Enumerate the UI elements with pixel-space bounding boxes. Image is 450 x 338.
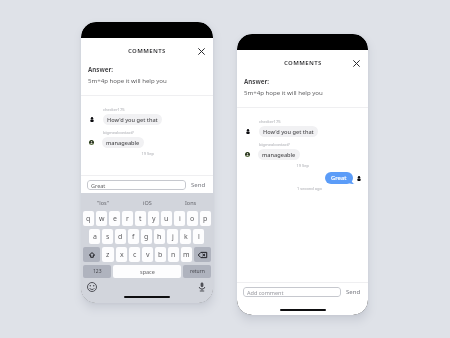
staticText: y xyxy=(152,214,156,224)
staticText: COMMENTS xyxy=(284,59,322,67)
button[interactable]: Emoji xyxy=(87,282,97,292)
staticText: q xyxy=(86,214,91,224)
button[interactable]: h xyxy=(154,229,165,244)
button[interactable]: n xyxy=(168,247,179,262)
button[interactable]: l xyxy=(193,229,204,244)
staticText: w xyxy=(99,214,105,224)
staticText: How'd you get that xyxy=(107,116,158,124)
staticText: b xyxy=(158,250,163,260)
button[interactable]: Ions xyxy=(169,193,213,211)
staticText: n xyxy=(171,250,176,260)
button[interactable]: Great xyxy=(331,172,347,184)
staticText: a xyxy=(93,232,97,242)
button[interactable]: Microphone xyxy=(197,282,207,292)
staticText: Answer: xyxy=(88,65,113,73)
button[interactable]: v xyxy=(142,247,153,262)
button[interactable]: return xyxy=(183,265,211,278)
staticText: 1 second ago xyxy=(251,186,368,191)
button[interactable]: d xyxy=(115,229,126,244)
button[interactable]: t xyxy=(135,211,146,226)
staticText: checker175 xyxy=(103,107,125,112)
button[interactable]: Great xyxy=(87,180,186,190)
button[interactable]: iOS xyxy=(125,193,169,211)
button[interactable]: a xyxy=(89,229,100,244)
staticText: j xyxy=(172,232,174,242)
staticText: manageable xyxy=(106,139,140,147)
staticText: x xyxy=(120,250,124,260)
staticText: v xyxy=(146,250,150,260)
staticText: How'd you get that xyxy=(263,128,314,136)
button[interactable]: c xyxy=(129,247,140,262)
button[interactable]: r xyxy=(122,211,133,226)
staticText: COMMENTS xyxy=(128,47,166,55)
staticText: return xyxy=(190,268,205,275)
staticText: checker175 xyxy=(259,119,281,124)
button[interactable]: m xyxy=(181,247,192,262)
staticText: i xyxy=(179,214,181,224)
button[interactable]: g xyxy=(141,229,152,244)
staticText: u xyxy=(164,214,169,224)
staticText: bigmealcontact? xyxy=(259,142,290,147)
staticText: Send xyxy=(191,181,206,189)
button[interactable]: i xyxy=(174,211,185,226)
staticText: h xyxy=(157,232,162,242)
button[interactable]: y xyxy=(148,211,159,226)
staticText: t xyxy=(139,214,142,224)
staticText: Answer: xyxy=(244,77,269,85)
staticText: Ions xyxy=(185,199,197,206)
button[interactable]: Shift xyxy=(83,247,100,262)
staticText: space xyxy=(140,268,155,275)
staticText: 5m+4p hope it will help you xyxy=(88,76,167,84)
button[interactable]: How'd you get that xyxy=(263,126,314,137)
button[interactable]: "los" xyxy=(81,193,125,211)
button[interactable]: p xyxy=(200,211,211,226)
button[interactable]: Add comment xyxy=(243,287,341,297)
staticText: 123 xyxy=(93,268,102,275)
button[interactable]: w xyxy=(96,211,107,226)
button[interactable]: k xyxy=(180,229,191,244)
button[interactable]: z xyxy=(102,247,114,262)
button[interactable]: manageable xyxy=(106,137,140,148)
button[interactable]: s xyxy=(102,229,113,244)
button[interactable]: Send xyxy=(190,181,207,189)
button[interactable]: Backspace xyxy=(194,247,211,262)
staticText: f xyxy=(132,232,135,242)
button[interactable]: Close xyxy=(352,59,361,68)
button[interactable]: space xyxy=(113,265,181,278)
staticText: bigmealcontact? xyxy=(103,130,134,135)
staticText: e xyxy=(113,214,117,224)
staticText: l xyxy=(198,232,200,242)
button[interactable]: f xyxy=(128,229,139,244)
button[interactable]: q xyxy=(83,211,94,226)
staticText: m xyxy=(183,250,190,260)
staticText: 19 Sep xyxy=(237,163,309,168)
button[interactable]: Close xyxy=(197,47,206,56)
staticText: 5m+4p hope it will help you xyxy=(244,88,323,96)
staticText: z xyxy=(106,250,110,260)
staticText: Great xyxy=(331,174,347,182)
staticText: "los" xyxy=(97,199,109,206)
button[interactable]: How'd you get that xyxy=(107,114,158,125)
staticText: k xyxy=(184,232,188,242)
button[interactable]: j xyxy=(167,229,178,244)
button[interactable]: x xyxy=(116,247,127,262)
staticText: Add comment xyxy=(247,289,284,296)
button[interactable]: o xyxy=(187,211,198,226)
button[interactable]: b xyxy=(155,247,166,262)
button[interactable]: manageable xyxy=(262,149,296,160)
staticText: iOS xyxy=(143,199,152,206)
staticText: Great xyxy=(91,182,106,189)
staticText: d xyxy=(118,232,123,242)
staticText: manageable xyxy=(262,151,296,159)
staticText: p xyxy=(203,214,208,224)
button[interactable]: 123 xyxy=(83,265,111,278)
button[interactable]: u xyxy=(161,211,172,226)
button[interactable]: Send xyxy=(345,288,362,296)
staticText: g xyxy=(144,232,149,242)
staticText: s xyxy=(106,232,110,242)
button[interactable]: e xyxy=(109,211,120,226)
staticText: c xyxy=(133,250,137,260)
staticText: r xyxy=(126,214,129,224)
staticText: o xyxy=(190,214,195,224)
staticText: Send xyxy=(346,288,361,296)
